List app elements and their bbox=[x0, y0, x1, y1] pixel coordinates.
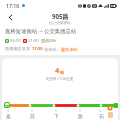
staticText: 905路 bbox=[52, 12, 69, 20]
staticText: 4 bbox=[55, 65, 60, 75]
staticText: 17:16 bbox=[6, 2, 20, 9]
staticText: 下 bbox=[54, 113, 59, 119]
staticText: 17:25 bbox=[32, 46, 43, 52]
staticText: 嘉 bbox=[6, 113, 11, 119]
staticText: 驶向本站 bbox=[61, 47, 78, 52]
staticText: 距离最近发车 bbox=[5, 46, 32, 52]
button[interactable]: Back bbox=[4, 11, 17, 24]
staticText: 21:50 bbox=[28, 38, 39, 44]
staticText: 往公交集团站 bbox=[49, 21, 71, 26]
staticText: 苏 bbox=[30, 113, 35, 119]
staticText: 石 bbox=[99, 113, 104, 119]
staticText: 票价2元 bbox=[41, 38, 56, 44]
staticText: 3分钟 / 1.6公里 bbox=[46, 76, 74, 81]
staticText: 站 bbox=[60, 70, 65, 75]
staticText: 嘉桥短途南站 bbox=[5, 28, 38, 35]
staticText: 等车站： bbox=[44, 47, 61, 52]
staticText: → bbox=[39, 29, 43, 34]
staticText: 06:50 bbox=[10, 38, 21, 44]
staticText: 公交集团总站 bbox=[44, 28, 77, 35]
staticText: 路 bbox=[78, 113, 83, 119]
